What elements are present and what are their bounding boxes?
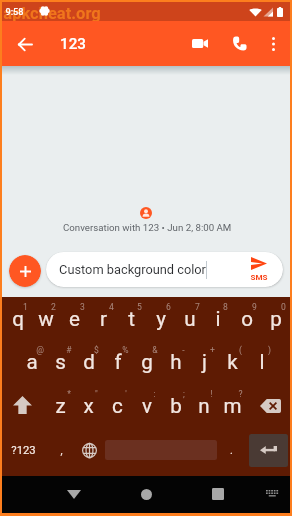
button[interactable]: h xyxy=(161,340,190,384)
staticText: j xyxy=(202,350,207,374)
staticText: d xyxy=(83,350,95,374)
button[interactable]: p xyxy=(261,297,290,340)
button[interactable]: j xyxy=(190,340,219,384)
staticText: f xyxy=(114,350,122,374)
staticText: h xyxy=(170,350,182,374)
button[interactable]: Call xyxy=(227,31,251,55)
staticText: g xyxy=(141,350,153,374)
button[interactable]: x xyxy=(74,384,103,428)
staticText: Conversation with 123 • Jun 2, 8:00 AM xyxy=(63,222,232,233)
button[interactable]: y xyxy=(146,297,175,340)
staticText: w xyxy=(38,307,54,331)
button[interactable]: ?123 xyxy=(2,428,45,472)
staticText: o xyxy=(241,307,253,331)
button[interactable]: s xyxy=(46,340,75,384)
staticText: 9 xyxy=(252,302,257,312)
staticText: - xyxy=(182,345,185,355)
button[interactable]: q xyxy=(3,297,32,340)
button[interactable]: , xyxy=(46,428,76,472)
staticText: 3 xyxy=(80,302,85,312)
button[interactable]: Add attachment xyxy=(9,255,41,287)
button[interactable]: . xyxy=(218,428,244,472)
button[interactable]: Switch keyboard xyxy=(262,482,282,502)
staticText: 2 xyxy=(51,302,56,312)
staticText: * xyxy=(67,389,71,399)
staticText: m xyxy=(223,394,242,418)
button[interactable]: n xyxy=(189,384,218,428)
staticText: e xyxy=(69,307,80,331)
staticText: x xyxy=(83,394,94,418)
staticText: y xyxy=(156,307,166,331)
staticText: 123 xyxy=(60,35,86,53)
staticText: r xyxy=(100,307,107,331)
button[interactable]: d xyxy=(74,340,103,384)
staticText: @ xyxy=(36,345,44,355)
staticText: , xyxy=(60,444,63,457)
staticText: b xyxy=(170,394,182,418)
button[interactable]: More options xyxy=(263,34,283,54)
staticText: apkcheat.org xyxy=(3,4,101,23)
staticText: z xyxy=(55,394,66,418)
button[interactable]: Back xyxy=(13,32,37,56)
staticText: % xyxy=(122,345,129,355)
staticText: Custom background color xyxy=(59,262,206,277)
staticText: 8 xyxy=(223,302,228,312)
staticText: t xyxy=(128,307,135,331)
button[interactable]: Send SMS xyxy=(245,254,275,284)
staticText: 5 xyxy=(137,302,142,312)
staticText: ( xyxy=(239,345,242,355)
staticText: 4 xyxy=(109,302,114,312)
button[interactable]: u xyxy=(175,297,204,340)
staticText: # xyxy=(66,345,72,355)
button[interactable]: Backspace xyxy=(247,384,290,428)
button[interactable]: o xyxy=(232,297,261,340)
button[interactable]: Home xyxy=(134,482,158,506)
button[interactable]: r xyxy=(89,297,118,340)
staticText: ?123 xyxy=(11,444,36,457)
button[interactable]: l xyxy=(247,340,276,384)
button[interactable]: Shift xyxy=(2,384,45,428)
staticText: c xyxy=(112,394,123,418)
staticText: a xyxy=(26,350,38,374)
staticText: v xyxy=(142,394,152,418)
staticText: ' xyxy=(125,389,127,399)
button[interactable]: i xyxy=(203,297,232,340)
button[interactable]: g xyxy=(132,340,161,384)
button[interactable]: m xyxy=(218,384,247,428)
staticText: $ xyxy=(94,345,99,355)
button[interactable]: a xyxy=(17,340,46,384)
staticText: k xyxy=(227,350,238,374)
staticText: 0 xyxy=(281,302,286,312)
button[interactable]: Recents xyxy=(206,482,230,506)
button[interactable]: e xyxy=(60,297,89,340)
staticText: i xyxy=(215,307,221,331)
staticText: n xyxy=(198,394,210,418)
button[interactable]: w xyxy=(31,297,60,340)
staticText: p xyxy=(270,307,282,331)
button[interactable]: c xyxy=(103,384,132,428)
button[interactable]: f xyxy=(103,340,132,384)
button[interactable]: Back xyxy=(62,482,86,506)
button[interactable]: b xyxy=(161,384,190,428)
button[interactable]: v xyxy=(132,384,161,428)
staticText: ; xyxy=(183,389,185,399)
button[interactable]: Enter xyxy=(249,434,288,467)
staticText: 9:58 xyxy=(5,6,24,17)
staticText: & xyxy=(152,345,158,355)
staticText: : xyxy=(153,389,156,399)
button[interactable]: z xyxy=(46,384,75,428)
staticText: ! xyxy=(210,389,213,399)
button[interactable]: k xyxy=(218,340,247,384)
button[interactable]: t xyxy=(117,297,146,340)
staticText: SMS xyxy=(250,272,268,281)
button[interactable]: Video call xyxy=(188,31,212,55)
button[interactable]: Change language xyxy=(76,428,106,472)
staticText: q xyxy=(12,307,24,331)
button[interactable] xyxy=(46,252,283,287)
staticText: 6 xyxy=(166,302,171,312)
staticText: 1 xyxy=(23,302,28,312)
staticText: ) xyxy=(268,345,271,355)
staticText: 7 xyxy=(195,302,200,312)
staticText: s xyxy=(55,350,66,374)
